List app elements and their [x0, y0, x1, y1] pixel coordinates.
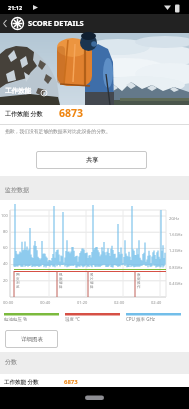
- staticText: 02:40: [151, 300, 162, 305]
- staticText: 40: [3, 261, 8, 266]
- staticText: 1.2GHz: [169, 248, 183, 253]
- staticText: 编: [90, 281, 94, 285]
- button[interactable]: 详细图表: [5, 330, 58, 348]
- staticText: 0.4GHz: [169, 281, 183, 286]
- staticText: 02:00: [114, 300, 125, 305]
- staticText: 6873: [59, 106, 84, 120]
- button[interactable]: 共享: [36, 151, 147, 169]
- staticText: 抱歉，我们没有足够的数据来对比此设备的分数。: [5, 128, 111, 134]
- staticText: 作: [137, 285, 141, 289]
- staticText: 0.8GHz: [169, 265, 183, 270]
- staticText: 工作效能 分数: [5, 110, 43, 118]
- staticText: CPU 频率 GHz: [126, 316, 155, 322]
- staticText: 详细图表: [21, 336, 43, 343]
- staticText: 辑: [59, 285, 63, 289]
- staticText: 01:20: [77, 300, 88, 305]
- button[interactable]: [0, 374, 189, 387]
- staticText: 照: [90, 273, 94, 277]
- staticText: 数: [137, 273, 141, 277]
- staticText: 00:00: [3, 300, 14, 305]
- staticText: 辑: [90, 285, 94, 289]
- button[interactable]: [0, 14, 189, 33]
- button[interactable]: SCORE DETAILS: [28, 18, 84, 28]
- staticText: 2GHz: [169, 216, 180, 221]
- staticText: 编: [59, 281, 63, 285]
- staticText: 工作效能: [5, 87, 31, 95]
- staticText: 监控数据: [5, 186, 29, 194]
- staticText: 浏: [16, 281, 20, 285]
- staticText: 片: [90, 277, 94, 281]
- staticText: 页: [16, 277, 20, 281]
- staticText: 频: [59, 277, 63, 281]
- staticText: 温度 °C: [65, 316, 80, 322]
- staticText: SCORE DETAILS: [28, 18, 84, 28]
- staticText: 60: [3, 245, 8, 250]
- staticText: 览: [16, 285, 20, 289]
- staticText: 分数: [5, 358, 17, 366]
- staticText: 网: [16, 273, 20, 277]
- staticText: 20: [3, 278, 8, 283]
- staticText: 00:40: [40, 300, 51, 305]
- staticText: 6873: [64, 378, 78, 386]
- staticText: 工作效能 分数: [4, 378, 39, 386]
- staticText: 21:12: [8, 4, 23, 11]
- staticText: 操: [137, 281, 141, 285]
- staticText: 视: [59, 273, 63, 277]
- staticText: 据: [137, 277, 141, 281]
- staticText: 80: [3, 229, 8, 234]
- staticText: 1.6GHz: [169, 232, 183, 237]
- staticText: 100: [1, 213, 8, 218]
- staticText: 共享: [86, 156, 98, 164]
- staticText: 电池电压 %: [4, 316, 27, 322]
